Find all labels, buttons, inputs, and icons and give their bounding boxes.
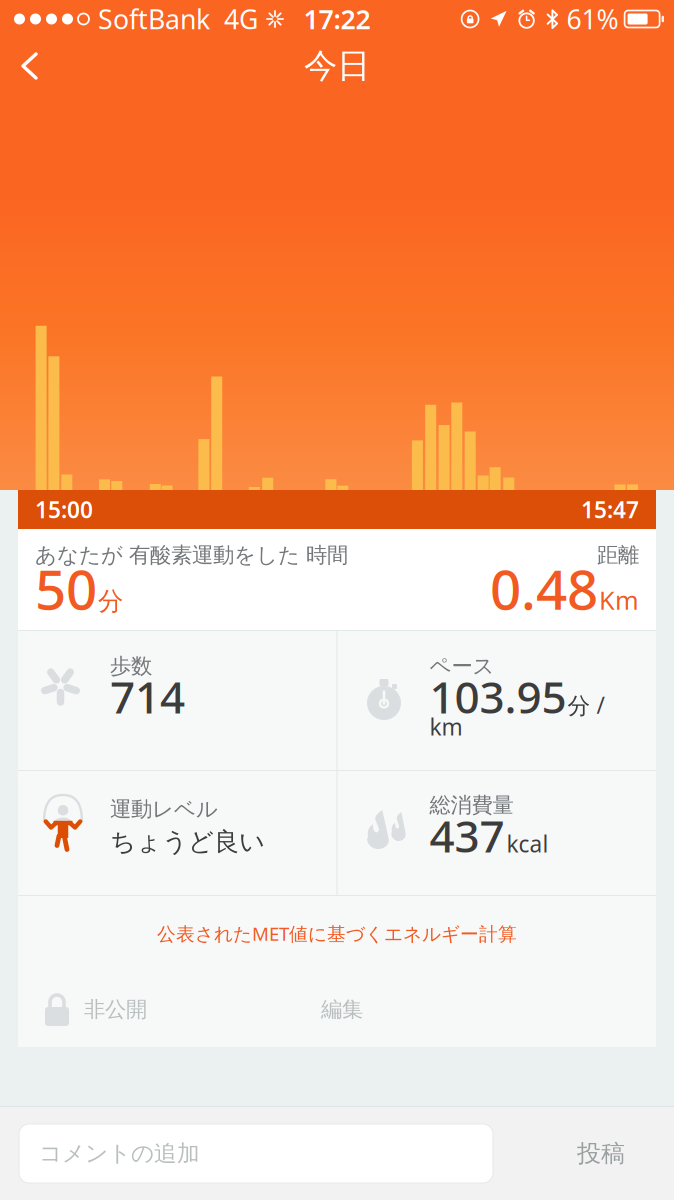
staticText: 61% <box>567 1 619 37</box>
staticText: Km <box>599 583 639 617</box>
staticText: 15:47 <box>581 494 639 524</box>
staticText: 総消費量 <box>429 792 513 818</box>
staticText: 4G <box>224 1 258 37</box>
staticText: 437 <box>429 806 504 865</box>
staticText: 17:22 <box>303 1 370 37</box>
button[interactable]: 投稿 <box>554 1123 648 1184</box>
staticText: km <box>429 712 462 742</box>
staticText: SoftBank <box>98 1 210 37</box>
staticText: あなたが 有酸素運動をした 時間 <box>35 542 348 568</box>
staticText: 分 <box>98 586 123 617</box>
staticText: コメントの追加 <box>39 1140 200 1167</box>
staticText: 運動レベル <box>110 796 218 822</box>
staticText: 投稿 <box>577 1139 625 1168</box>
staticText: ペース <box>429 653 494 679</box>
staticText: 15:00 <box>35 494 93 524</box>
button[interactable]: Back <box>0 39 62 93</box>
button[interactable]: 編集 <box>297 986 387 1033</box>
button[interactable]: 非公開 <box>18 983 169 1036</box>
staticText: 非公開 <box>84 996 147 1023</box>
staticText: 歩数 <box>110 653 152 679</box>
staticText: 分 / <box>567 690 604 720</box>
staticText: 50 <box>35 552 97 625</box>
staticText: 0.48 <box>490 552 598 625</box>
staticText: 714 <box>110 667 185 726</box>
button[interactable]: コメントの追加 <box>19 1124 493 1183</box>
staticText: 公表されたMET値に基づくエネルギー計算 <box>157 921 517 946</box>
staticText: kcal <box>506 829 548 859</box>
staticText: 103.95 <box>429 667 566 726</box>
staticText: 今日 <box>304 45 370 86</box>
staticText: 距離 <box>597 542 639 568</box>
staticText: 編集 <box>321 996 363 1023</box>
staticText: ちょうど良い <box>110 826 265 857</box>
